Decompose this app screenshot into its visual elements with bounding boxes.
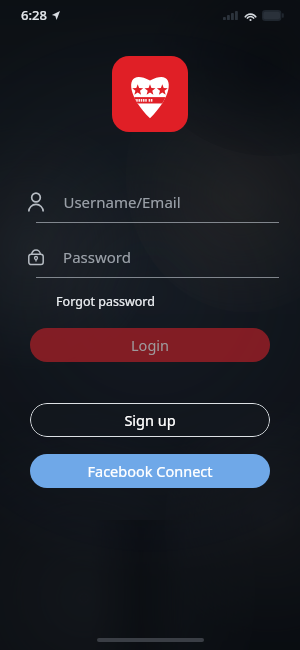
- other: User: [21, 187, 51, 217]
- staticText: 6:28: [21, 6, 47, 24]
- button[interactable]: Password: [21, 242, 279, 278]
- staticText: Login: [131, 335, 169, 355]
- other: Password: [21, 242, 51, 272]
- button[interactable]: Facebook Connect: [30, 454, 270, 488]
- button[interactable]: Login: [30, 328, 270, 362]
- button[interactable]: Forgot password: [56, 290, 155, 313]
- staticText: Password: [63, 247, 131, 267]
- button[interactable]: Sign up: [30, 403, 270, 437]
- staticText: Facebook Connect: [87, 461, 213, 481]
- staticText: Username/Email: [63, 192, 181, 212]
- staticText: Sign up: [124, 410, 176, 430]
- staticText: Forgot password: [56, 293, 155, 310]
- button[interactable]: User: [21, 187, 279, 223]
